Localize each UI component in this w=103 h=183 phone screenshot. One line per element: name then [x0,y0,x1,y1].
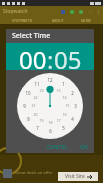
button[interactable]: Share app [79,10,83,14]
button[interactable]: 05 [54,43,82,70]
staticText: 6 [49,128,52,134]
staticText: 2 [71,90,74,96]
staticText: 15 [65,103,70,108]
staticText: Great deals on offer [15,170,53,175]
staticText: STOPWATCH [12,18,33,23]
staticText: 23 [39,88,44,93]
button[interactable]: WhatsApp [70,10,74,14]
staticText: 22 [33,95,38,100]
staticText: CANCEL [47,143,68,150]
staticText: Stopwatch [3,8,28,15]
button[interactable]: More options [97,8,100,16]
staticText: 10 [25,90,31,96]
button[interactable]: MORE [72,18,101,23]
staticText: 9 [23,103,26,109]
button[interactable]: Share [88,10,92,14]
staticText: ABOUT [52,18,64,23]
button[interactable]: STOPWATCH [2,18,43,23]
staticText: 19 [39,118,44,123]
staticText: 16 [62,112,67,117]
button[interactable]: OK [78,141,90,152]
staticText: 17 [56,118,61,123]
staticText: Select Time [12,31,51,41]
staticText: 5 [62,125,65,131]
staticText: 8 [27,116,30,122]
staticText: 11 [34,81,40,87]
staticText: 21 [31,103,36,108]
staticText: 18 [48,120,53,125]
button[interactable]: 00 [19,43,47,70]
staticText: OK [80,143,88,150]
staticText: 20 [33,112,38,117]
staticText: 12 [47,77,53,83]
staticText: 1 [62,81,65,87]
staticText: MORE [81,18,92,23]
staticText: 13 [56,88,61,93]
staticText: 14 [62,95,67,100]
staticText: 7 [36,125,39,131]
staticText: 4 [71,116,74,122]
staticText: 3 [74,103,77,109]
staticText: : [47,43,54,70]
button[interactable]: Visit Site [58,172,98,181]
staticText: Visit Site [65,173,85,180]
button[interactable]: CANCEL [45,141,70,152]
button[interactable]: ABOUT [43,18,72,23]
